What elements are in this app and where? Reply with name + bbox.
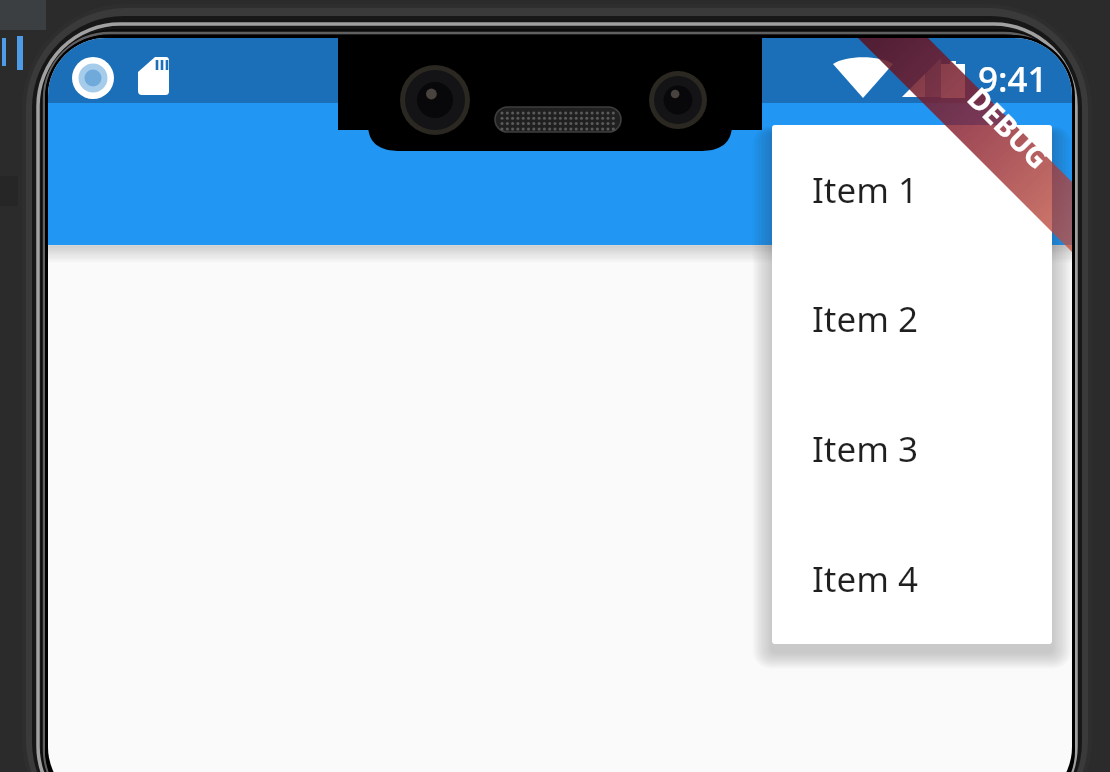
- button[interactable]: Item 2: [772, 254, 1052, 384]
- staticText: Item 1: [812, 166, 919, 214]
- staticText: Item 2: [812, 295, 919, 343]
- staticText: DEBUG: [960, 78, 1058, 177]
- staticText: Item 4: [812, 555, 919, 603]
- staticText: 9:41: [978, 55, 1048, 103]
- staticText: Item 3: [812, 425, 919, 473]
- button[interactable]: Item 4: [772, 514, 1052, 644]
- button[interactable]: Item 3: [772, 384, 1052, 514]
- button[interactable]: Item 1: [772, 125, 1052, 254]
- other: Debug build banner: [944, 62, 1074, 192]
